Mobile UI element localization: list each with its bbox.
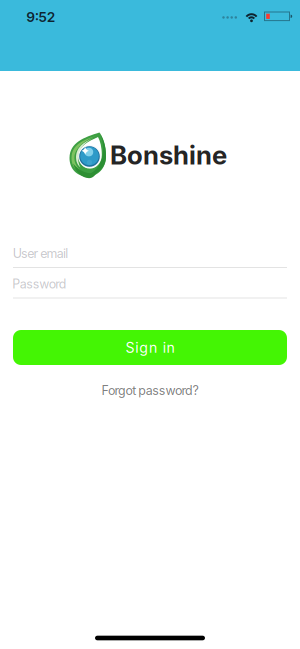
button[interactable]: Password bbox=[13, 274, 287, 299]
staticText: Sign in bbox=[125, 339, 175, 356]
button[interactable]: User email bbox=[13, 243, 287, 268]
staticText: User email bbox=[13, 246, 68, 261]
staticText: 9:52 bbox=[26, 9, 56, 25]
staticText: Password bbox=[12, 276, 67, 291]
staticText: Forgot password? bbox=[101, 383, 199, 398]
staticText: Bonshine bbox=[110, 139, 227, 171]
button[interactable]: Sign in bbox=[13, 330, 287, 365]
button[interactable]: Forgot password? bbox=[101, 383, 199, 398]
